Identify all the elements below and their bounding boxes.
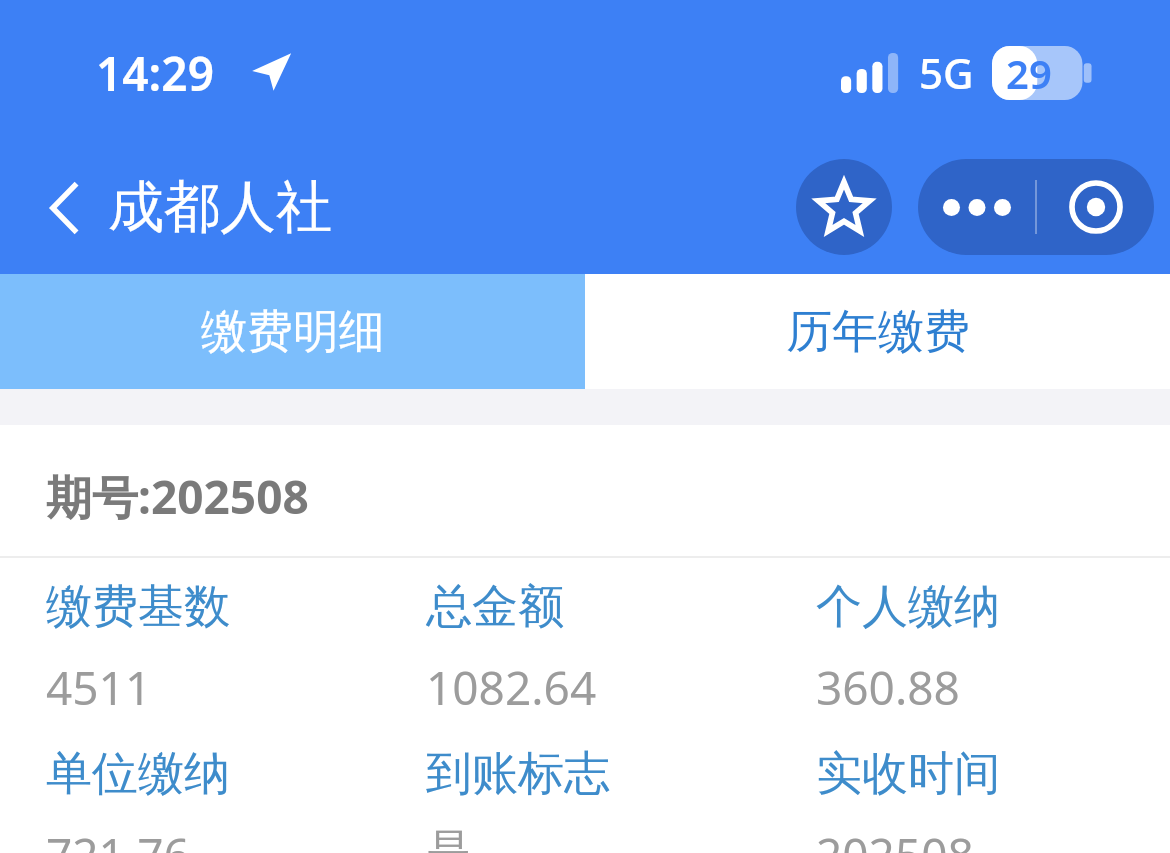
staticText: 个人缴纳 — [816, 578, 1000, 636]
staticText: 29 — [1006, 46, 1052, 100]
button[interactable]: 历年缴费 — [585, 274, 1170, 389]
staticText: 缴费基数 — [46, 578, 230, 636]
staticText: 4511 — [46, 656, 152, 719]
staticText: 缴费明细 — [201, 303, 385, 361]
staticText: 1082.64 — [426, 656, 597, 719]
button[interactable]: Close — [1037, 159, 1154, 255]
other: Back — [48, 179, 82, 237]
button[interactable]: More — [918, 159, 1035, 255]
staticText: 历年缴费 — [786, 303, 970, 361]
staticText: 360.88 — [816, 656, 960, 719]
button[interactable]: Favorite — [796, 159, 892, 255]
staticText: 5G — [919, 44, 974, 101]
staticText: 实收时间 — [816, 745, 1000, 803]
staticText: 单位缴纳 — [46, 745, 230, 803]
staticText: 成都人社 — [108, 172, 332, 243]
staticText: 总金额 — [426, 578, 564, 636]
button[interactable]: 缴费明细 — [0, 274, 585, 389]
staticText: 期号:202508 — [46, 465, 309, 528]
staticText: 是 — [426, 823, 472, 853]
staticText: 14:29 — [96, 42, 214, 105]
staticText: 到账标志 — [426, 745, 610, 803]
button[interactable]: Back — [42, 162, 338, 253]
staticText: 721.76 — [46, 823, 190, 853]
staticText: 202508 — [816, 823, 974, 853]
